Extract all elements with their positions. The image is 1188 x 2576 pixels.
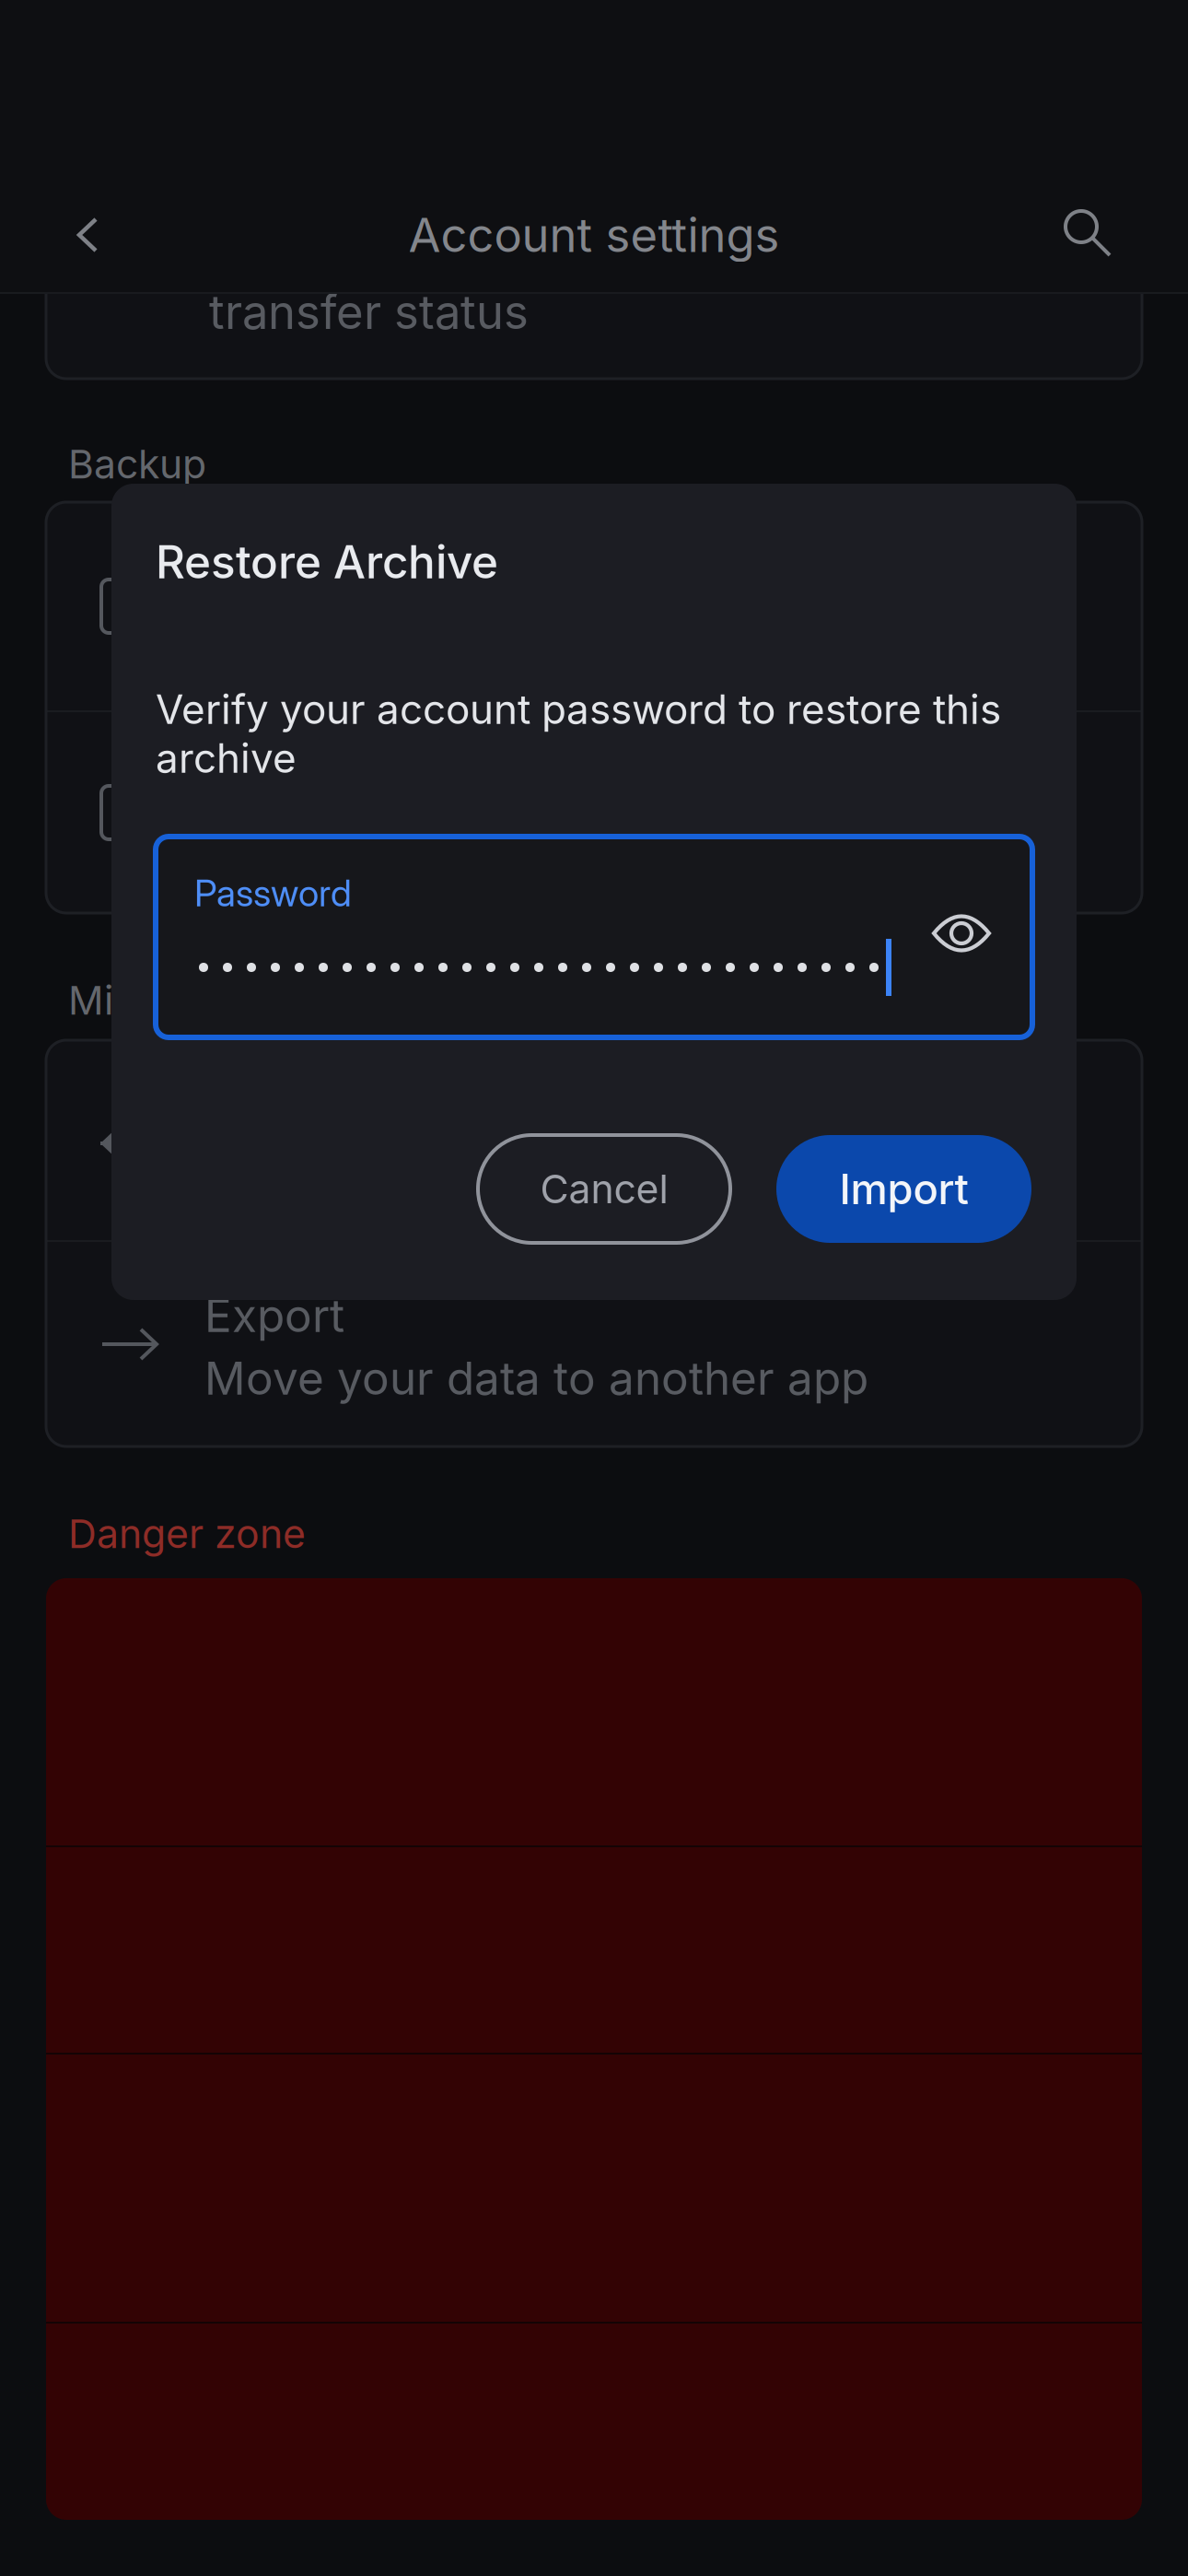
button[interactable]: [46, 712, 1142, 913]
staticText: Bring data in from a backup: [204, 1155, 833, 1213]
button[interactable]: Import: [46, 1040, 1142, 1240]
staticText: Backup: [68, 440, 206, 488]
staticText: Danger zone: [68, 1510, 306, 1558]
staticText: Migration: [68, 977, 243, 1024]
button[interactable]: Import: [776, 1135, 1031, 1243]
staticText: Cancel: [540, 1165, 668, 1213]
staticText: Account settings: [408, 207, 780, 263]
button[interactable]: [46, 502, 1142, 710]
staticText: Import: [839, 1164, 968, 1214]
staticText: Restore Archive: [156, 534, 498, 589]
button[interactable]: Cancel: [478, 1135, 730, 1243]
staticText: Move your data to another app: [204, 1351, 868, 1406]
button[interactable]: Search: [1043, 189, 1132, 277]
button[interactable]: Export: [46, 1242, 1142, 1446]
button[interactable]: Back: [43, 191, 132, 279]
staticText: transfer status: [209, 284, 529, 340]
button[interactable]: Show password: [922, 894, 1001, 973]
staticText: Export: [204, 1288, 344, 1343]
staticText: Password: [194, 871, 352, 915]
staticText: Verify your account password to restore …: [156, 685, 1001, 783]
